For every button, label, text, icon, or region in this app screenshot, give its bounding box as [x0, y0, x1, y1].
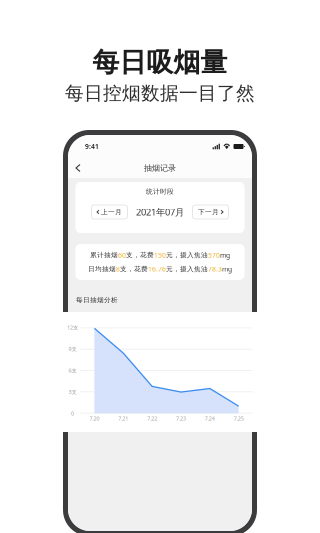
- staticText: mg: [220, 251, 230, 259]
- staticText: 16.76: [148, 264, 166, 273]
- staticText: 7.20: [89, 415, 99, 422]
- staticText: 78.3: [208, 264, 222, 273]
- staticText: 日均抽烟: [88, 265, 116, 273]
- staticText: 7.23: [176, 415, 186, 422]
- staticText: 9:41: [85, 142, 99, 151]
- staticText: 支，花费: [120, 265, 148, 273]
- staticText: 2021年07月: [136, 206, 184, 218]
- staticText: mg: [222, 264, 232, 273]
- staticText: 3支: [68, 388, 76, 396]
- button[interactable]: 上一月: [91, 205, 127, 219]
- staticText: 累计抽烟: [90, 251, 118, 259]
- staticText: 每日控烟数据一目了然: [65, 82, 255, 105]
- staticText: 7.24: [205, 415, 215, 422]
- staticText: 上一月: [101, 208, 122, 216]
- staticText: 150: [154, 251, 166, 259]
- staticText: 每日吸烟量: [92, 46, 227, 79]
- staticText: 支，花费: [126, 251, 154, 259]
- staticText: 7.21: [118, 415, 128, 422]
- staticText: 0: [71, 410, 74, 417]
- staticText: 抽烟记录: [144, 163, 176, 173]
- staticText: 7.25: [234, 415, 244, 422]
- staticText: 60: [118, 251, 126, 259]
- staticText: 6支: [68, 367, 76, 374]
- staticText: 每日抽烟分析: [76, 296, 118, 304]
- staticText: 570: [208, 251, 220, 259]
- staticText: 7.22: [147, 415, 157, 422]
- staticText: 下一月: [198, 208, 219, 216]
- staticText: 8: [116, 264, 120, 273]
- staticText: 元，摄入焦油: [166, 265, 208, 273]
- staticText: 统计时段: [146, 187, 174, 196]
- staticText: 9支: [68, 345, 76, 353]
- button[interactable]: 下一月: [192, 205, 228, 219]
- button[interactable]: Back: [68, 159, 88, 177]
- staticText: 12支: [67, 324, 78, 331]
- staticText: 元，摄入焦油: [166, 251, 208, 259]
